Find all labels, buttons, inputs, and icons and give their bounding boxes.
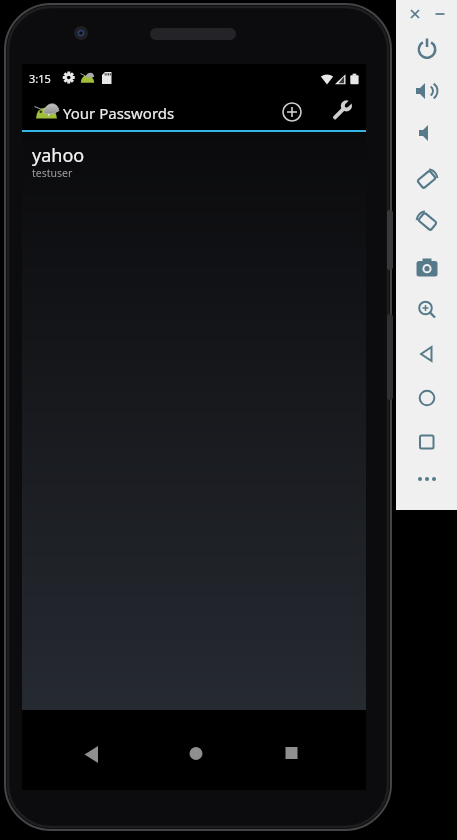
button[interactable] xyxy=(415,256,439,280)
button[interactable] xyxy=(415,208,439,232)
button[interactable] xyxy=(415,386,439,410)
button[interactable] xyxy=(415,342,439,366)
staticText: 3:15 xyxy=(29,71,51,86)
button[interactable]: yahoo xyxy=(22,132,366,178)
staticText: testuser xyxy=(32,166,73,180)
button[interactable] xyxy=(274,94,310,130)
button[interactable] xyxy=(172,730,220,778)
staticText: Your Passwords xyxy=(63,103,175,123)
button[interactable] xyxy=(268,730,316,778)
button[interactable] xyxy=(324,92,360,128)
button[interactable] xyxy=(415,121,439,145)
button[interactable] xyxy=(407,6,423,22)
button[interactable] xyxy=(415,298,439,322)
button[interactable] xyxy=(415,79,439,103)
button[interactable] xyxy=(415,430,439,454)
button[interactable] xyxy=(415,467,439,491)
button[interactable] xyxy=(67,730,115,778)
staticText: yahoo xyxy=(32,143,85,168)
button[interactable] xyxy=(415,37,439,61)
button[interactable] xyxy=(432,6,448,22)
button[interactable] xyxy=(415,166,439,190)
